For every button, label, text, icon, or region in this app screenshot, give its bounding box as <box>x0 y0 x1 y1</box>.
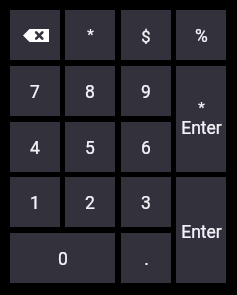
staticText: 4 <box>30 138 40 159</box>
button[interactable]: 9 <box>121 66 171 116</box>
button[interactable]: % <box>176 10 226 60</box>
staticText: . <box>144 249 149 270</box>
staticText: Enter <box>181 118 222 136</box>
button[interactable]: . <box>121 233 171 283</box>
button[interactable]: 3 <box>121 177 171 227</box>
button[interactable]: Enter <box>176 177 226 283</box>
button[interactable]: * <box>176 66 226 172</box>
staticText: 5 <box>85 138 95 159</box>
staticText: 9 <box>141 82 151 103</box>
staticText: Enter <box>181 222 222 240</box>
button[interactable]: 4 <box>10 122 60 172</box>
button[interactable]: 8 <box>65 66 115 116</box>
staticText: * <box>198 99 205 113</box>
staticText: 8 <box>85 82 95 103</box>
button[interactable]: 1 <box>10 177 60 227</box>
button[interactable]: 5 <box>65 122 115 172</box>
staticText: % <box>195 26 208 47</box>
button[interactable]: 2 <box>65 177 115 227</box>
button[interactable]: * <box>65 10 115 60</box>
staticText: 6 <box>141 138 151 159</box>
button[interactable]: 7 <box>10 66 60 116</box>
button[interactable]: 6 <box>121 122 171 172</box>
staticText: $ <box>141 27 151 46</box>
button[interactable]: 0 <box>10 233 115 283</box>
staticText: 7 <box>30 82 40 103</box>
button[interactable]: Backspace <box>10 10 60 60</box>
staticText: 1 <box>30 193 40 214</box>
button[interactable]: $ <box>121 10 171 60</box>
staticText: 2 <box>85 193 95 214</box>
staticText: 0 <box>58 249 68 270</box>
staticText: 3 <box>141 193 151 214</box>
staticText: * <box>87 26 94 44</box>
